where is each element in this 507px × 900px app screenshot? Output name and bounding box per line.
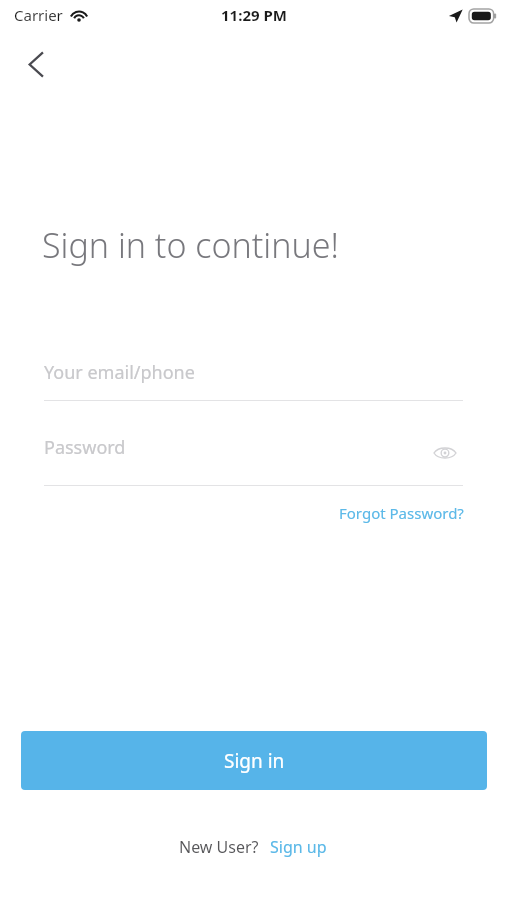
staticText: Forgot Password? xyxy=(339,503,464,523)
button[interactable]: Show password xyxy=(427,435,463,471)
button[interactable]: Your email/phone xyxy=(44,360,463,401)
button[interactable]: Back xyxy=(12,40,60,88)
staticText: Sign in to continue! xyxy=(42,222,339,268)
button[interactable]: Sign up xyxy=(268,833,329,861)
staticText: Your email/phone xyxy=(44,360,195,385)
button[interactable]: Forgot Password? xyxy=(337,499,466,527)
staticText: Carrier xyxy=(14,5,63,25)
staticText: 11:29 PM xyxy=(221,5,287,25)
staticText: Sign in xyxy=(224,748,285,774)
button[interactable]: Password xyxy=(44,435,126,460)
staticText: New User? xyxy=(179,836,259,858)
button[interactable]: Sign in xyxy=(21,731,487,790)
staticText: Password xyxy=(44,435,126,460)
staticText: Sign up xyxy=(270,836,327,858)
